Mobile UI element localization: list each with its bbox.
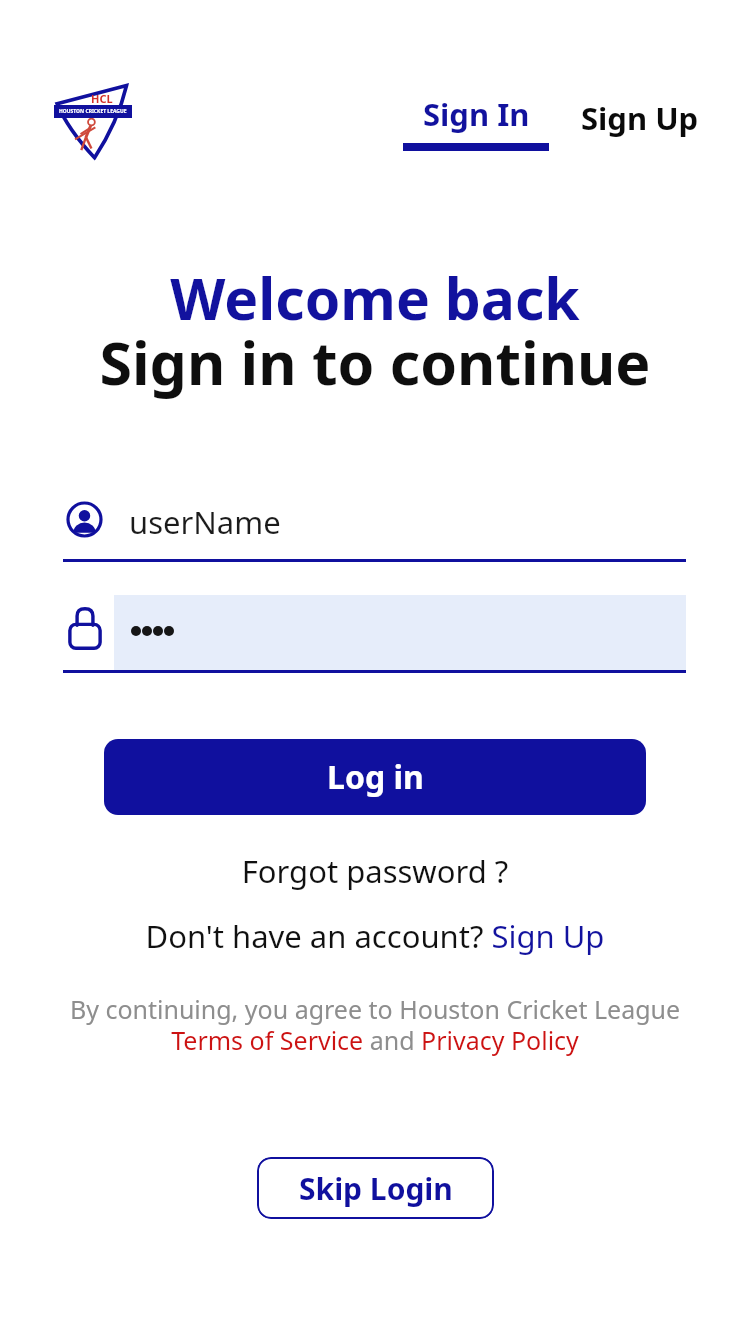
staticText: HCL [91, 91, 113, 106]
staticText: Welcome back [0, 259, 750, 337]
staticText: Sign In [423, 93, 530, 135]
staticText: Skip Login [299, 1168, 453, 1209]
button[interactable] [114, 595, 686, 670]
button[interactable]: Terms of Service and Privacy Policy [0, 1023, 750, 1057]
button[interactable]: Sign Up [581, 97, 699, 139]
button[interactable]: Sign In [403, 93, 549, 151]
button[interactable]: Log in [104, 739, 646, 815]
staticText: Sign in to continue [0, 322, 750, 402]
staticText: Log in [327, 755, 424, 799]
staticText: HOUSTON CRICKET LEAGUE [59, 108, 127, 115]
button[interactable]: Don't have an account? Sign Up [0, 915, 750, 957]
button[interactable] [63, 492, 686, 562]
button[interactable]: Forgot password ? [0, 850, 750, 892]
button[interactable]: Skip Login [257, 1157, 494, 1219]
staticText: By continuing, you agree to Houston Cric… [0, 992, 750, 1026]
staticText: userName [129, 501, 281, 543]
